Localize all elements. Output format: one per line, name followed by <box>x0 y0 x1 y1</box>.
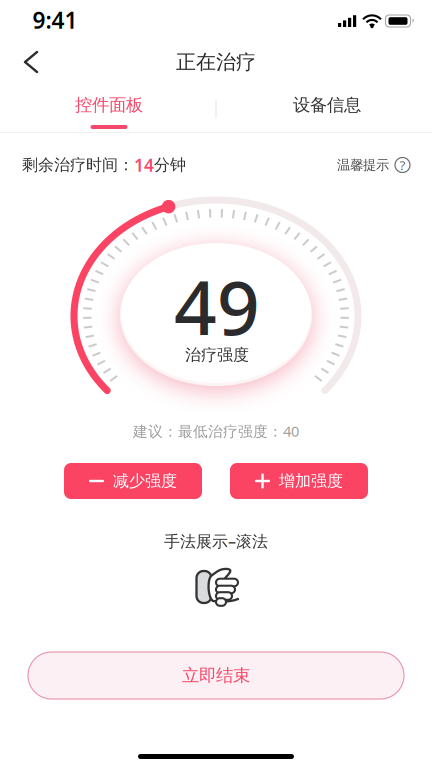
button[interactable]: 增加强度 <box>230 463 368 499</box>
button[interactable]: Back <box>10 40 56 84</box>
button[interactable]: 减少强度 <box>64 463 202 499</box>
staticText: ? <box>399 156 405 174</box>
staticText: 温馨提示 <box>337 157 389 173</box>
staticText: 减少强度 <box>113 471 177 491</box>
staticText: 控件面板 <box>75 94 143 116</box>
staticText: 立即结束 <box>182 665 250 686</box>
button[interactable]: 温馨提示 <box>337 157 410 173</box>
staticText: 14 <box>134 153 154 176</box>
staticText: 剩余治疗时间： <box>22 155 134 175</box>
staticText: 49 <box>174 256 260 356</box>
staticText: 9:41 <box>32 5 77 35</box>
staticText: 增加强度 <box>279 471 343 491</box>
button[interactable]: 立即结束 <box>28 652 404 699</box>
staticText: 建议：最低治疗强度：40 <box>133 421 299 441</box>
button[interactable]: 控件面板 <box>37 84 181 133</box>
staticText: 正在治疗 <box>176 50 256 74</box>
staticText: 手法展示–滚法 <box>164 530 268 552</box>
button[interactable]: 设备信息 <box>255 84 399 133</box>
staticText: 分钟 <box>154 155 186 175</box>
staticText: 设备信息 <box>293 94 361 116</box>
staticText: 治疗强度 <box>185 345 249 365</box>
